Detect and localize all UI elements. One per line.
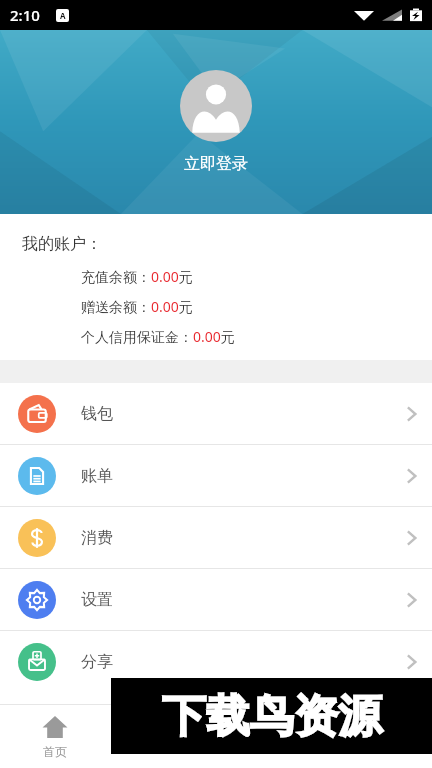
- button[interactable]: 分享: [0, 631, 432, 692]
- button[interactable]: 立即登录: [184, 154, 248, 174]
- button[interactable]: 账单: [0, 445, 432, 506]
- staticText: 个人信用保证金：0.00元: [81, 327, 235, 346]
- staticText: 消费: [81, 528, 113, 548]
- staticText: 下载鸟资源: [162, 689, 382, 744]
- staticText: 账单: [81, 466, 113, 486]
- button[interactable]: 钱包: [0, 383, 432, 444]
- button[interactable]: 消费: [0, 507, 432, 568]
- staticText: 2:10: [10, 5, 40, 25]
- staticText: 我的账户：: [22, 234, 102, 254]
- staticText: 钱包: [81, 404, 113, 424]
- staticText: 赠送余额：0.00元: [81, 297, 193, 316]
- button[interactable]: 设置: [0, 569, 432, 630]
- staticText: 分享: [81, 652, 113, 672]
- staticText: 充值余额：0.00元: [81, 267, 193, 286]
- staticText: A: [60, 10, 66, 21]
- staticText: 首页: [43, 744, 67, 759]
- button[interactable]: 首页: [14, 714, 96, 759]
- staticText: 设置: [81, 590, 113, 610]
